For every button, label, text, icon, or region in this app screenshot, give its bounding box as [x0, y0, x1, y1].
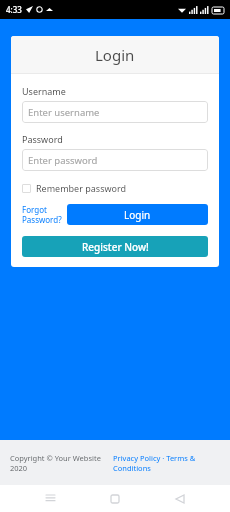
- staticText: Register Now!: [82, 240, 149, 254]
- button[interactable]: Recents: [35, 485, 65, 512]
- staticText: Copyright © Your Website 2020: [10, 453, 105, 473]
- staticText: Enter password: [28, 154, 98, 167]
- staticText: Username: [22, 85, 66, 97]
- staticText: Privacy Policy · Terms & Conditions: [113, 453, 220, 473]
- button[interactable]: Forgot Password?: [22, 204, 62, 225]
- staticText: Login: [95, 45, 135, 65]
- button[interactable]: Register Now!: [22, 236, 208, 257]
- staticText: Forgot Password?: [22, 204, 62, 225]
- staticText: Enter username: [28, 106, 100, 119]
- staticText: Remember password: [36, 182, 127, 194]
- button[interactable]: Enter password: [22, 149, 208, 171]
- button[interactable]: Login: [67, 204, 208, 225]
- staticText: Password: [22, 133, 63, 145]
- button[interactable]: Remember password: [22, 182, 127, 194]
- staticText: 4:33: [6, 4, 22, 15]
- button[interactable]: Enter username: [22, 101, 208, 123]
- staticText: Login: [124, 208, 151, 222]
- button[interactable]: Back: [165, 485, 195, 512]
- button[interactable]: Privacy Policy · Terms & Conditions: [113, 453, 220, 473]
- button[interactable]: Home: [100, 485, 130, 512]
